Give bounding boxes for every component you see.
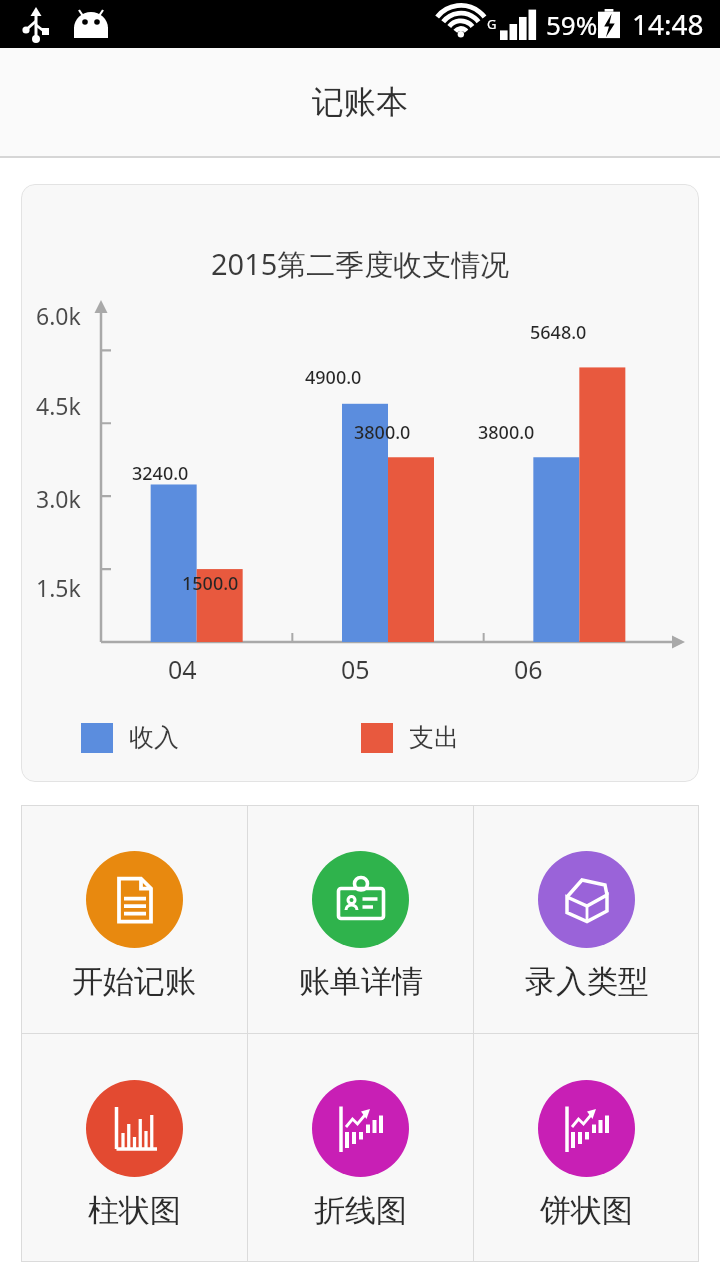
button[interactable]: 开始记账 [21,805,247,1033]
staticText: 开始记账 [72,962,196,1001]
other: 柱状图 [86,1080,183,1177]
staticText: 5648.0 [530,320,587,345]
staticText: 折线图 [314,1191,407,1230]
staticText: G [487,15,497,33]
staticText: 支出 [409,722,459,753]
button[interactable]: 录入类型 [474,805,699,1033]
staticText: 2015第二季度收支情况 [211,244,510,284]
staticText: 05 [341,652,370,686]
other: 账单详情 [312,851,409,948]
other: 折线图 [312,1080,409,1177]
staticText: 04 [168,652,197,686]
button[interactable]: 柱状图 [21,1034,247,1262]
button[interactable]: 账单详情 [248,805,473,1033]
other: 录入类型 [538,851,635,948]
other: 饼状图 [538,1080,635,1177]
staticText: 收入 [129,722,179,753]
staticText: 6.0k [36,300,81,331]
staticText: 记账本 [312,82,408,122]
staticText: 3800.0 [354,420,411,445]
staticText: 1.5k [36,572,81,603]
staticText: 1500.0 [182,571,239,596]
staticText: 饼状图 [540,1191,633,1230]
staticText: 4900.0 [305,365,362,390]
button[interactable]: 折线图 [248,1034,473,1262]
staticText: 柱状图 [88,1191,181,1230]
staticText: 录入类型 [525,962,649,1001]
staticText: 3.0k [36,483,81,514]
staticText: 账单详情 [299,962,423,1001]
staticText: 3800.0 [478,420,535,445]
other: 开始记账 [86,851,183,948]
staticText: 4.5k [36,390,81,421]
staticText: 59% [546,7,598,42]
staticText: 3240.0 [132,461,189,486]
staticText: 14:48 [632,5,704,43]
button[interactable]: 饼状图 [474,1034,699,1262]
staticText: 06 [514,652,543,686]
